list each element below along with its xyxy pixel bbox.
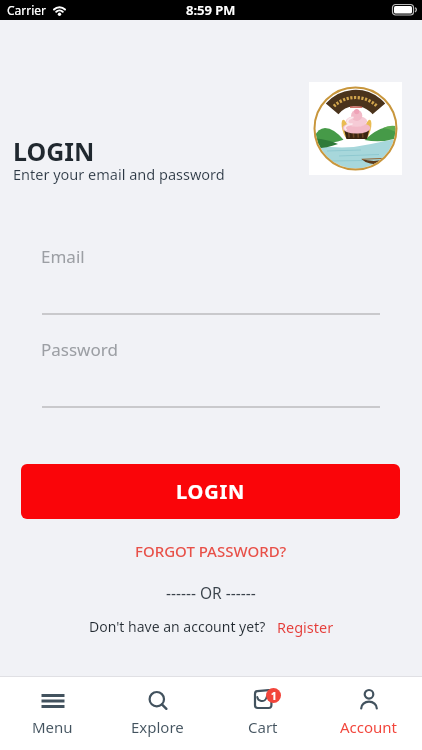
button[interactable]: Email <box>41 242 380 316</box>
staticText: Password <box>41 338 118 361</box>
button[interactable]: Password <box>41 335 380 409</box>
staticText: Don't have an account yet? <box>89 617 266 636</box>
staticText: Enter your email and password <box>13 164 225 184</box>
button[interactable]: 1 <box>210 677 316 750</box>
staticText: Account <box>340 717 398 737</box>
staticText: ------ OR ------ <box>166 582 256 603</box>
staticText: LOGIN <box>13 134 95 168</box>
staticText: Carrier <box>7 2 47 18</box>
button[interactable]: Menu <box>0 677 105 750</box>
staticText: LOGIN <box>176 478 246 505</box>
staticText: 8:59 PM <box>186 1 236 19</box>
staticText: Explore <box>131 717 184 737</box>
button[interactable]: Register <box>277 617 334 637</box>
button[interactable]: Account <box>316 677 422 750</box>
staticText: Menu <box>32 717 73 737</box>
button[interactable]: LOGIN <box>21 464 400 519</box>
button[interactable]: FORGOT PASSWORD? <box>135 541 287 561</box>
staticText: 1 <box>271 689 277 703</box>
button[interactable]: Explore <box>105 677 210 750</box>
staticText: Email <box>41 245 85 268</box>
staticText: Cart <box>248 717 278 737</box>
